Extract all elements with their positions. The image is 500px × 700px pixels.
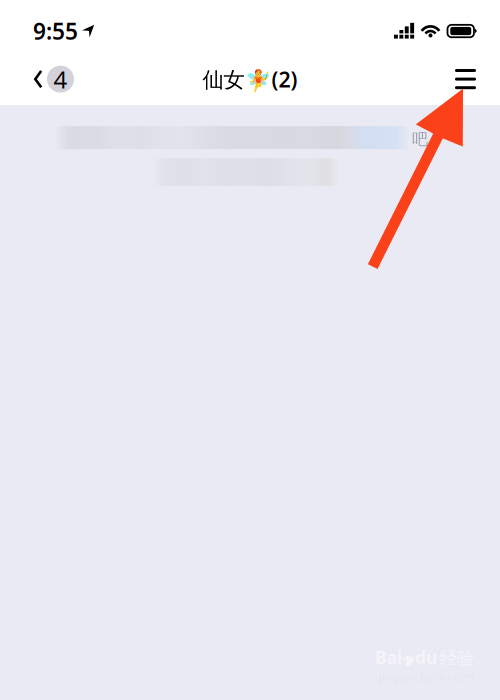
button[interactable]: Back bbox=[0, 54, 90, 104]
staticText: 9:55 bbox=[33, 16, 78, 46]
staticText: 吧。 bbox=[412, 129, 444, 149]
button[interactable]: Menu bbox=[435, 54, 500, 104]
staticText: 经验 bbox=[440, 647, 474, 669]
staticText: du bbox=[415, 646, 437, 669]
staticText: 4 bbox=[53, 63, 67, 95]
staticText: Bai bbox=[375, 646, 402, 669]
staticText: 仙女🧚(2) bbox=[202, 65, 297, 93]
